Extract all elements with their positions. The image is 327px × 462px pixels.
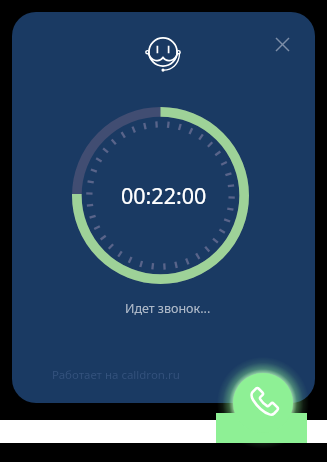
button[interactable]: Answer [216, 413, 307, 443]
staticText: 00:22:00 [121, 181, 207, 210]
staticText: Работает на calldron.ru [52, 367, 180, 383]
button[interactable]: Call [233, 373, 293, 433]
staticText: Идет звонок... [125, 300, 211, 317]
button[interactable]: Close [264, 26, 300, 62]
